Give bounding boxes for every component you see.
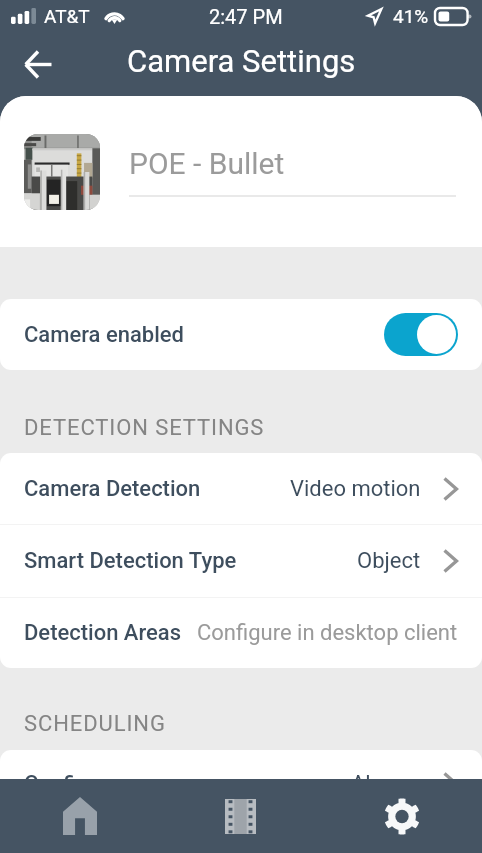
- staticText: AT&T: [44, 5, 90, 27]
- staticText: Always: [351, 771, 421, 797]
- button[interactable]: Settings: [321, 779, 482, 853]
- button[interactable]: Detection Areas: [0, 598, 482, 668]
- button[interactable]: Camera enabled: [384, 313, 458, 356]
- button[interactable]: Smart Detection Type: [0, 525, 482, 597]
- staticText: 41%: [393, 5, 429, 27]
- staticText: SCHEDULING: [24, 711, 166, 737]
- staticText: Configure in desktop client: [197, 620, 458, 646]
- button[interactable]: Home: [0, 779, 160, 853]
- button[interactable]: Configure: [0, 750, 482, 817]
- staticText: Camera Settings: [127, 43, 356, 79]
- staticText: Smart Detection Type: [24, 548, 237, 574]
- button[interactable]: Recordings: [160, 779, 321, 853]
- button[interactable]: Camera Detection: [0, 453, 482, 524]
- staticText: Configure: [24, 771, 121, 797]
- staticText: DETECTION SETTINGS: [24, 415, 265, 441]
- staticText: Video motion: [290, 476, 421, 502]
- staticText: Object: [357, 548, 421, 574]
- staticText: Detection Areas: [24, 620, 181, 646]
- staticText: 2:47 PM: [209, 5, 283, 28]
- button[interactable]: Camera enabled: [0, 299, 482, 370]
- staticText: Camera Detection: [24, 476, 201, 502]
- staticText: Camera enabled: [24, 322, 184, 348]
- staticText: POE - Bullet: [129, 146, 285, 181]
- button[interactable]: Back: [14, 40, 62, 88]
